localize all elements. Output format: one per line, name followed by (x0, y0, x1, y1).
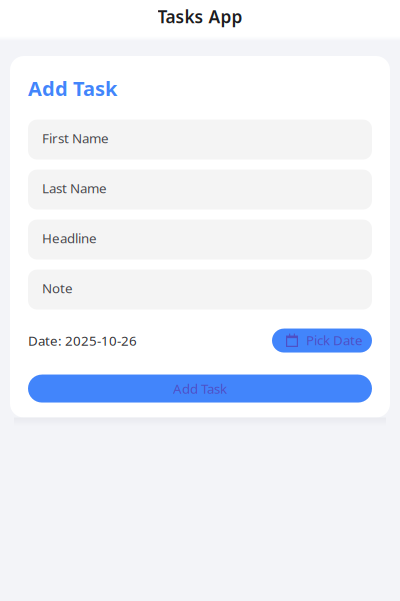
button[interactable]: Add Task (28, 375, 372, 403)
staticText: Note (42, 279, 73, 297)
staticText: Tasks App (157, 5, 242, 28)
staticText: Last Name (42, 179, 107, 197)
staticText: First Name (42, 129, 109, 147)
staticText: Headline (42, 229, 97, 247)
staticText: Add Task (28, 75, 117, 102)
button[interactable]: Pick Date (272, 329, 372, 353)
staticText: Date: 2025-10-26 (28, 332, 137, 349)
staticText: Pick Date (306, 331, 363, 349)
staticText: Add Task (173, 380, 227, 397)
